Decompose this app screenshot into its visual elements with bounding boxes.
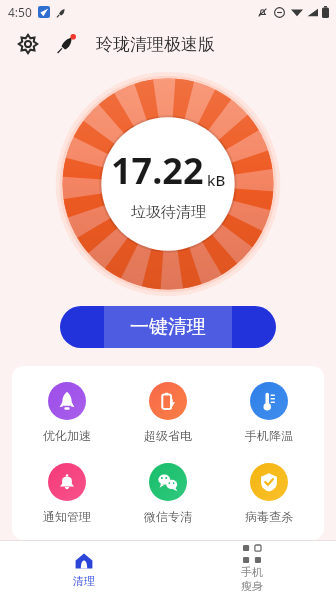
staticText: 手机降温 — [245, 428, 293, 443]
button[interactable]: 病毒查杀 — [223, 461, 315, 526]
staticText: 超级省电 — [144, 428, 192, 443]
button[interactable]: 手机 — [168, 541, 336, 597]
button[interactable]: 通知管理 — [21, 461, 113, 526]
button[interactable]: 清理 — [0, 541, 168, 597]
staticText: 病毒查杀 — [245, 509, 293, 524]
staticText: 一键清理 — [130, 315, 206, 339]
button[interactable]: 超级省电 — [122, 380, 214, 445]
staticText: 优化加速 — [43, 428, 91, 443]
staticText: 通知管理 — [43, 509, 91, 524]
staticText: 瘦身 — [241, 579, 263, 593]
button[interactable]: 微信专清 — [122, 461, 214, 526]
button[interactable]: Boost — [50, 28, 82, 60]
staticText: 微信专清 — [144, 509, 192, 524]
staticText: 手机 — [241, 565, 263, 579]
button[interactable]: 优化加速 — [21, 380, 113, 445]
button[interactable]: 一键清理 — [60, 306, 276, 348]
button[interactable]: 手机降温 — [223, 380, 315, 445]
staticText: 清理 — [73, 574, 95, 588]
staticText: 垃圾待清理 — [131, 203, 206, 222]
staticText: kB — [207, 170, 226, 190]
button[interactable]: Settings — [12, 28, 44, 60]
staticText: 4:50 — [8, 4, 32, 20]
staticText: 玲珑清理极速版 — [96, 34, 215, 55]
button[interactable]: Junk scan result — [54, 70, 282, 298]
staticText: 17.22 — [111, 146, 204, 195]
